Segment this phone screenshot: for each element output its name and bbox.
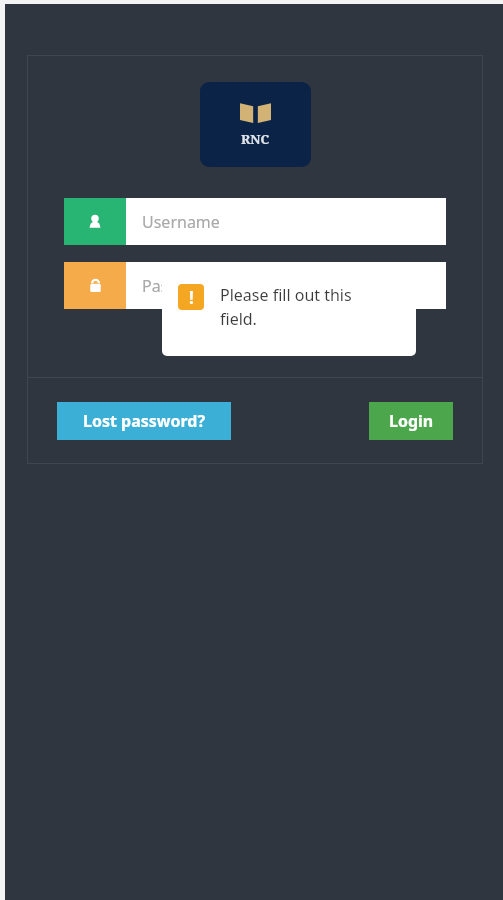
- staticText: Lost password?: [83, 410, 206, 432]
- staticText: RNC: [241, 130, 270, 148]
- staticText: Username: [142, 211, 220, 233]
- staticText: !: [189, 286, 194, 309]
- staticText: Login: [389, 410, 434, 432]
- button[interactable]: Username: [64, 198, 446, 245]
- button[interactable]: Password: [64, 262, 446, 309]
- staticText: Please fill out this field.: [220, 284, 380, 330]
- staticText: Password: [142, 275, 215, 297]
- button[interactable]: Lost password?: [57, 402, 231, 440]
- button[interactable]: Login: [369, 402, 453, 440]
- button[interactable]: RNC logo: [200, 82, 311, 167]
